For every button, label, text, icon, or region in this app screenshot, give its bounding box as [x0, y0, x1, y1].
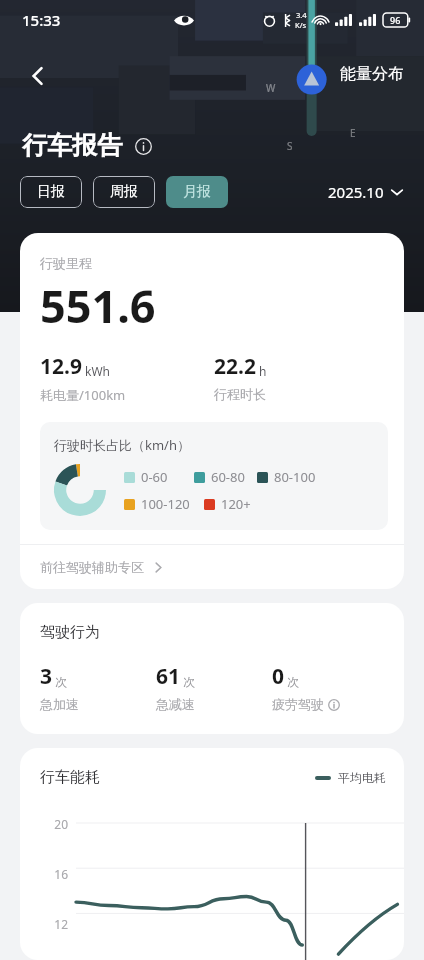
staticText: 驾驶行为: [40, 623, 100, 642]
staticText: 平均电耗: [338, 770, 386, 785]
button[interactable]: 月报: [166, 176, 228, 208]
staticText: 周报: [110, 183, 138, 201]
staticText: 日报: [37, 183, 65, 201]
staticText: 能量分布: [340, 64, 404, 84]
staticText: 20: [46, 816, 68, 832]
staticText: 22.2: [214, 352, 256, 381]
staticText: 行车报告: [22, 130, 122, 161]
staticText: 551.6: [40, 275, 156, 336]
staticText: 61: [156, 662, 181, 691]
staticText: 行驶时长占比（km/h）: [54, 436, 190, 454]
staticText: 2025.10: [328, 182, 384, 202]
staticText: 16: [46, 866, 68, 882]
button[interactable]: 前往驾驶辅助专区: [20, 545, 404, 589]
staticText: 80-100: [274, 468, 316, 486]
staticText: 次: [287, 674, 299, 689]
staticText: 60-80: [211, 468, 245, 486]
staticText: W: [266, 81, 276, 95]
button[interactable]: 周报: [93, 176, 155, 208]
staticText: 急减速: [156, 696, 195, 712]
staticText: 120+: [221, 495, 251, 513]
staticText: 行驶里程: [40, 255, 92, 271]
staticText: 次: [183, 674, 195, 689]
button[interactable]: Info: [327, 698, 340, 711]
staticText: 行车能耗: [40, 768, 100, 787]
staticText: 3: [40, 662, 53, 691]
staticText: K/s: [295, 20, 307, 30]
staticText: 12.9: [40, 352, 82, 381]
staticText: 3.4: [296, 10, 307, 20]
button[interactable]: 日报: [20, 176, 82, 208]
staticText: 12: [46, 916, 68, 932]
staticText: S: [287, 139, 293, 153]
button[interactable]: 2025.10: [328, 182, 404, 202]
staticText: E: [350, 126, 356, 140]
staticText: 次: [55, 674, 67, 689]
staticText: 疲劳驾驶: [272, 696, 324, 712]
staticText: 行程时长: [214, 386, 266, 402]
staticText: 急加速: [40, 696, 79, 712]
staticText: 0: [272, 662, 285, 691]
staticText: h: [259, 363, 267, 379]
staticText: 前往驾驶辅助专区: [40, 559, 144, 575]
staticText: kWh: [85, 363, 110, 379]
button[interactable]: 能量分布: [340, 64, 404, 84]
staticText: 月报: [183, 183, 211, 201]
staticText: 0-60: [141, 468, 168, 486]
staticText: 100-120: [141, 495, 190, 513]
staticText: 耗电量/100km: [40, 386, 126, 404]
button[interactable]: Info: [130, 133, 156, 159]
staticText: 15:33: [22, 10, 61, 30]
button[interactable]: Back: [14, 52, 62, 100]
staticText: 96: [390, 14, 401, 26]
